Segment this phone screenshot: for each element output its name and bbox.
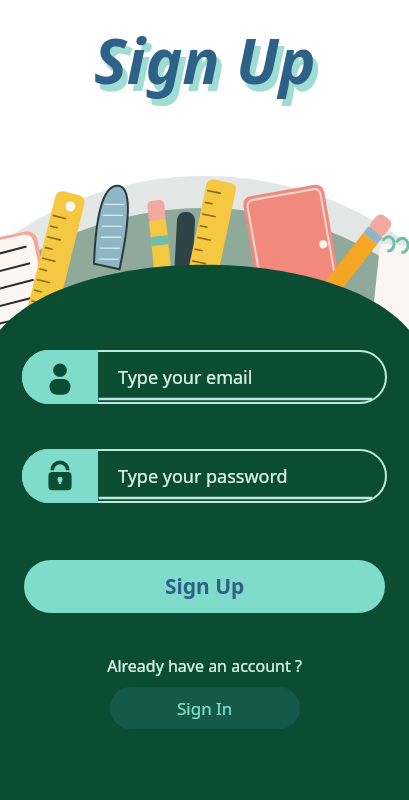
staticText: Already have an account ? [0,655,409,677]
button[interactable]: Sign In [110,687,300,729]
button[interactable]: Email [22,350,387,404]
staticText: Type your password [118,464,288,489]
staticText: Sign In [177,697,233,720]
staticText: Type your email [118,365,253,390]
button[interactable]: Password [22,449,387,503]
other: Password [22,449,98,503]
staticText: Sign Up [94,18,316,102]
other: Email [22,350,98,404]
staticText: Sign Up [99,25,321,109]
button[interactable]: Sign Up [24,560,385,613]
staticText: Sign Up [165,572,245,601]
